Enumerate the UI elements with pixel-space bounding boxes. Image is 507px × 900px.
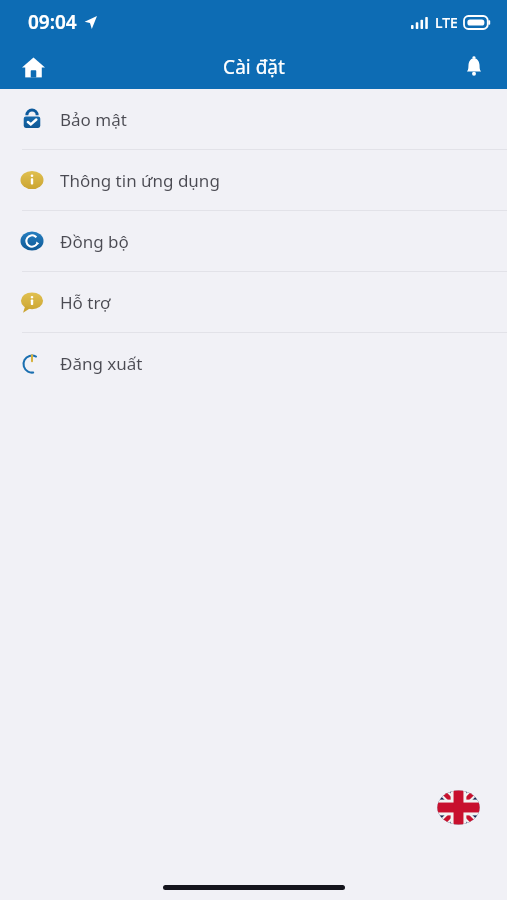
staticText: 09:04 xyxy=(28,9,77,35)
button[interactable]: Change language xyxy=(436,785,481,830)
staticText: LTE xyxy=(435,13,458,32)
button[interactable]: Thông tin ứng dụng xyxy=(0,150,507,210)
button[interactable]: Notifications xyxy=(453,46,495,88)
staticText: Bảo mật xyxy=(60,108,127,131)
staticText: Hỗ trợ xyxy=(60,291,111,314)
button[interactable]: Đăng xuất xyxy=(0,333,507,393)
button[interactable]: Hỗ trợ xyxy=(0,272,507,332)
staticText: Thông tin ứng dụng xyxy=(60,169,220,192)
staticText: Đồng bộ xyxy=(60,230,129,253)
staticText: Đăng xuất xyxy=(60,352,143,375)
button[interactable]: Đồng bộ xyxy=(0,211,507,271)
staticText: Cài đặt xyxy=(223,54,285,80)
button[interactable]: Bảo mật xyxy=(0,89,507,149)
button[interactable]: Home xyxy=(12,46,54,88)
